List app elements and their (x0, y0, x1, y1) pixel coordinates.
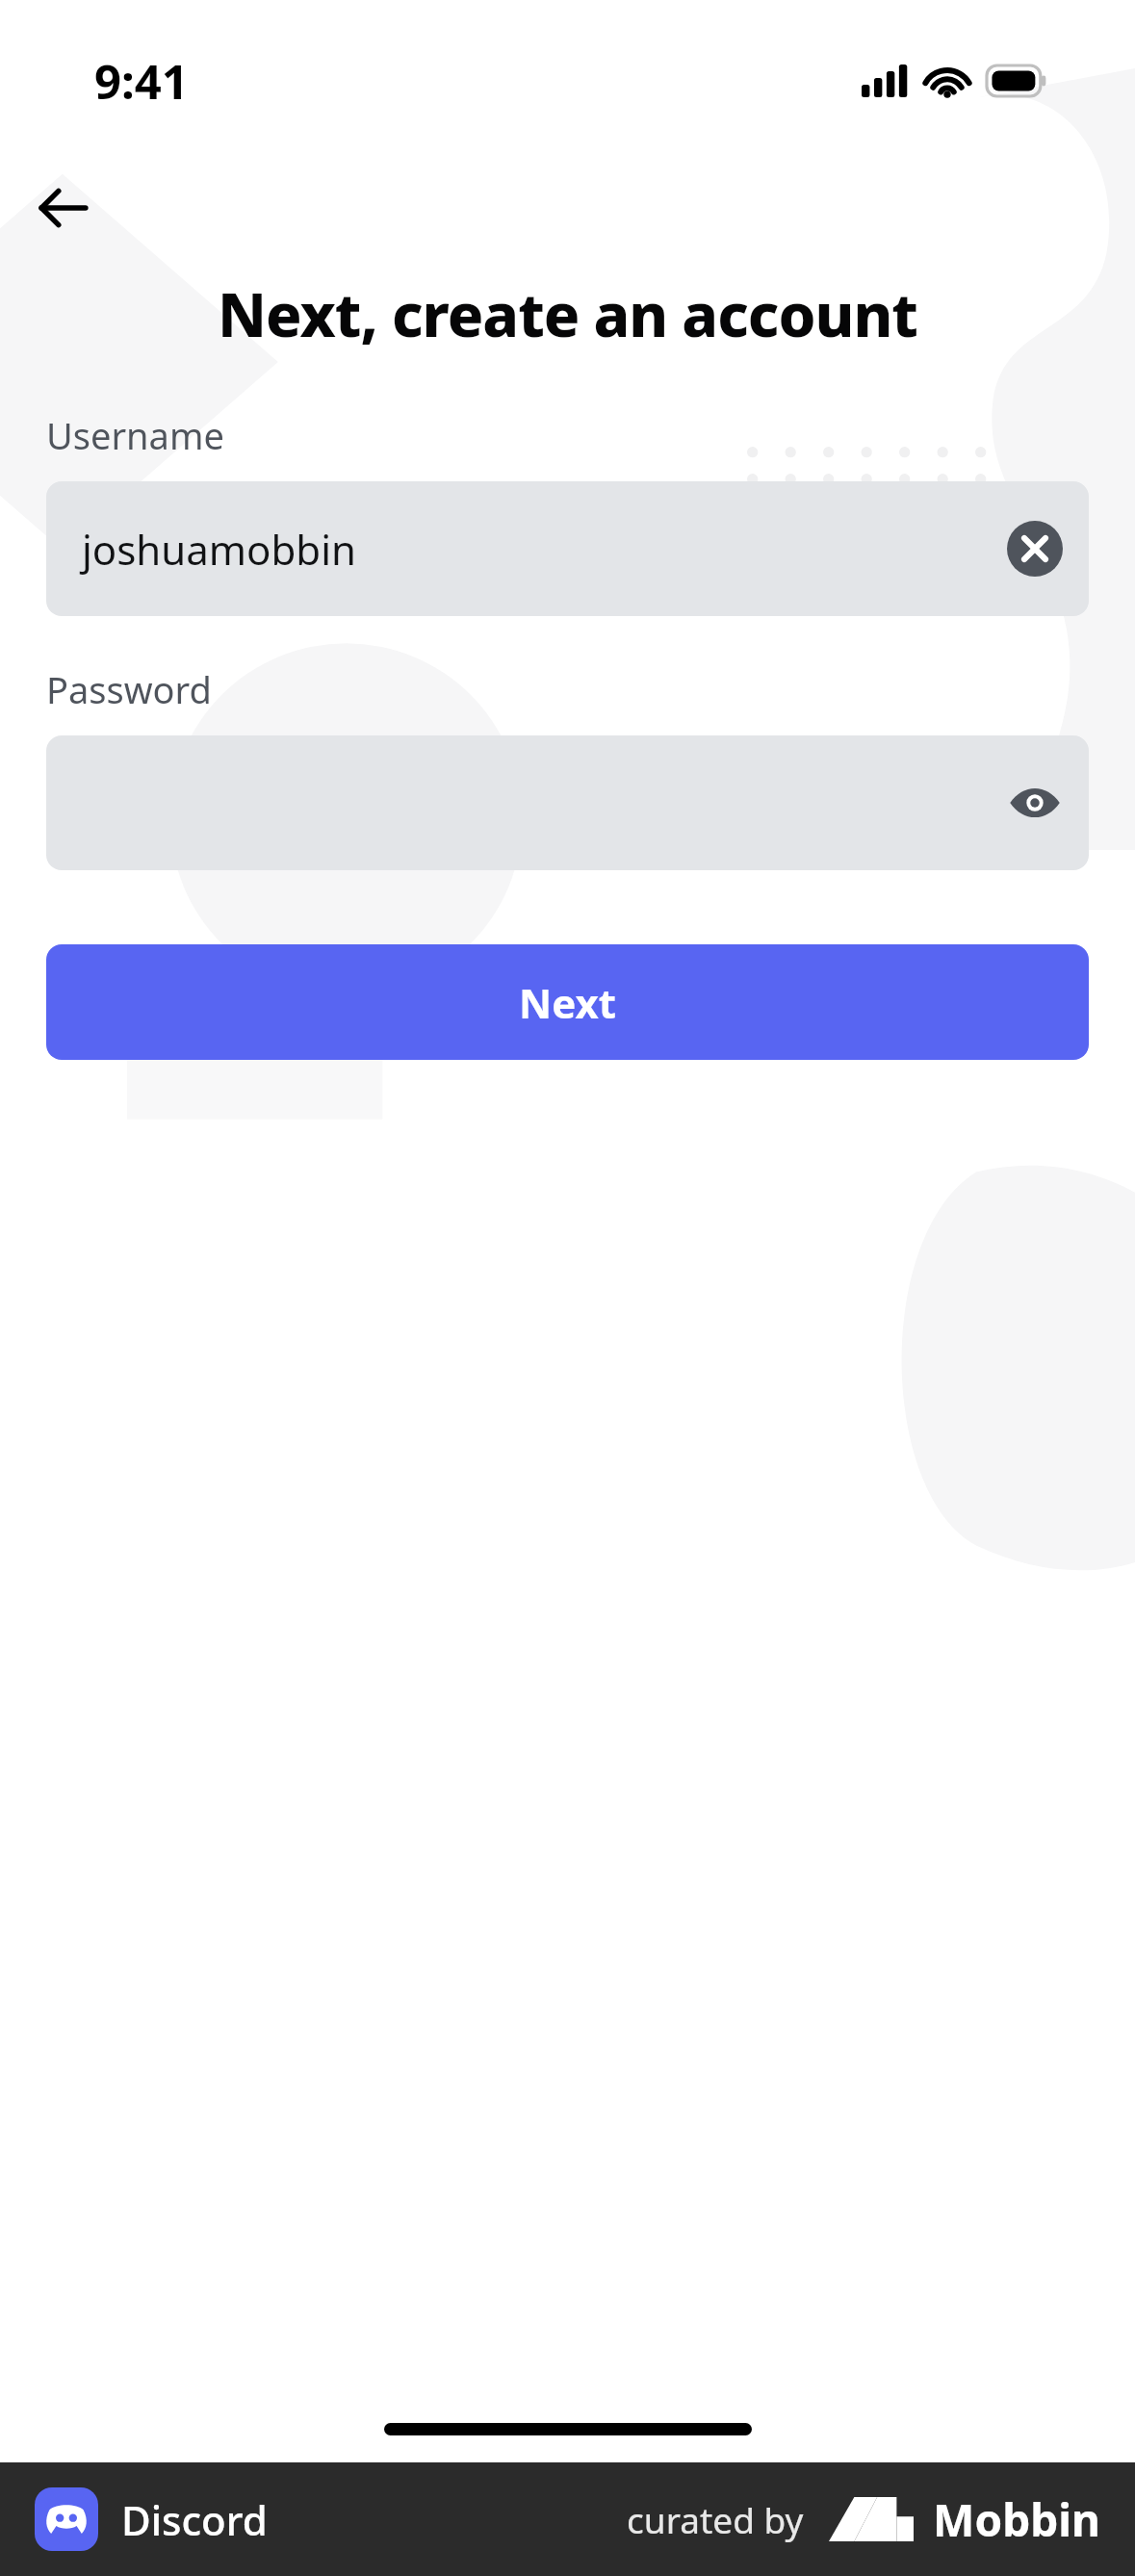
staticText: Next, create an account (39, 273, 1096, 354)
button[interactable]: Back (21, 166, 106, 250)
button[interactable]: Clear text (1002, 516, 1068, 581)
staticText: Next (519, 975, 616, 1030)
staticText: 9:41 (94, 49, 189, 114)
staticText: Discord (121, 2492, 268, 2547)
staticText: curated by (627, 2495, 804, 2543)
staticText: joshuamobbin (82, 522, 356, 577)
button[interactable]: Show password (1002, 770, 1068, 836)
staticText: Password (46, 664, 212, 714)
button[interactable]: Show password (46, 735, 1089, 870)
staticText: Username (46, 410, 224, 460)
button[interactable]: joshuamobbin (46, 481, 1089, 616)
staticText: Mobbin (933, 2489, 1100, 2550)
button[interactable]: Next (46, 944, 1089, 1060)
